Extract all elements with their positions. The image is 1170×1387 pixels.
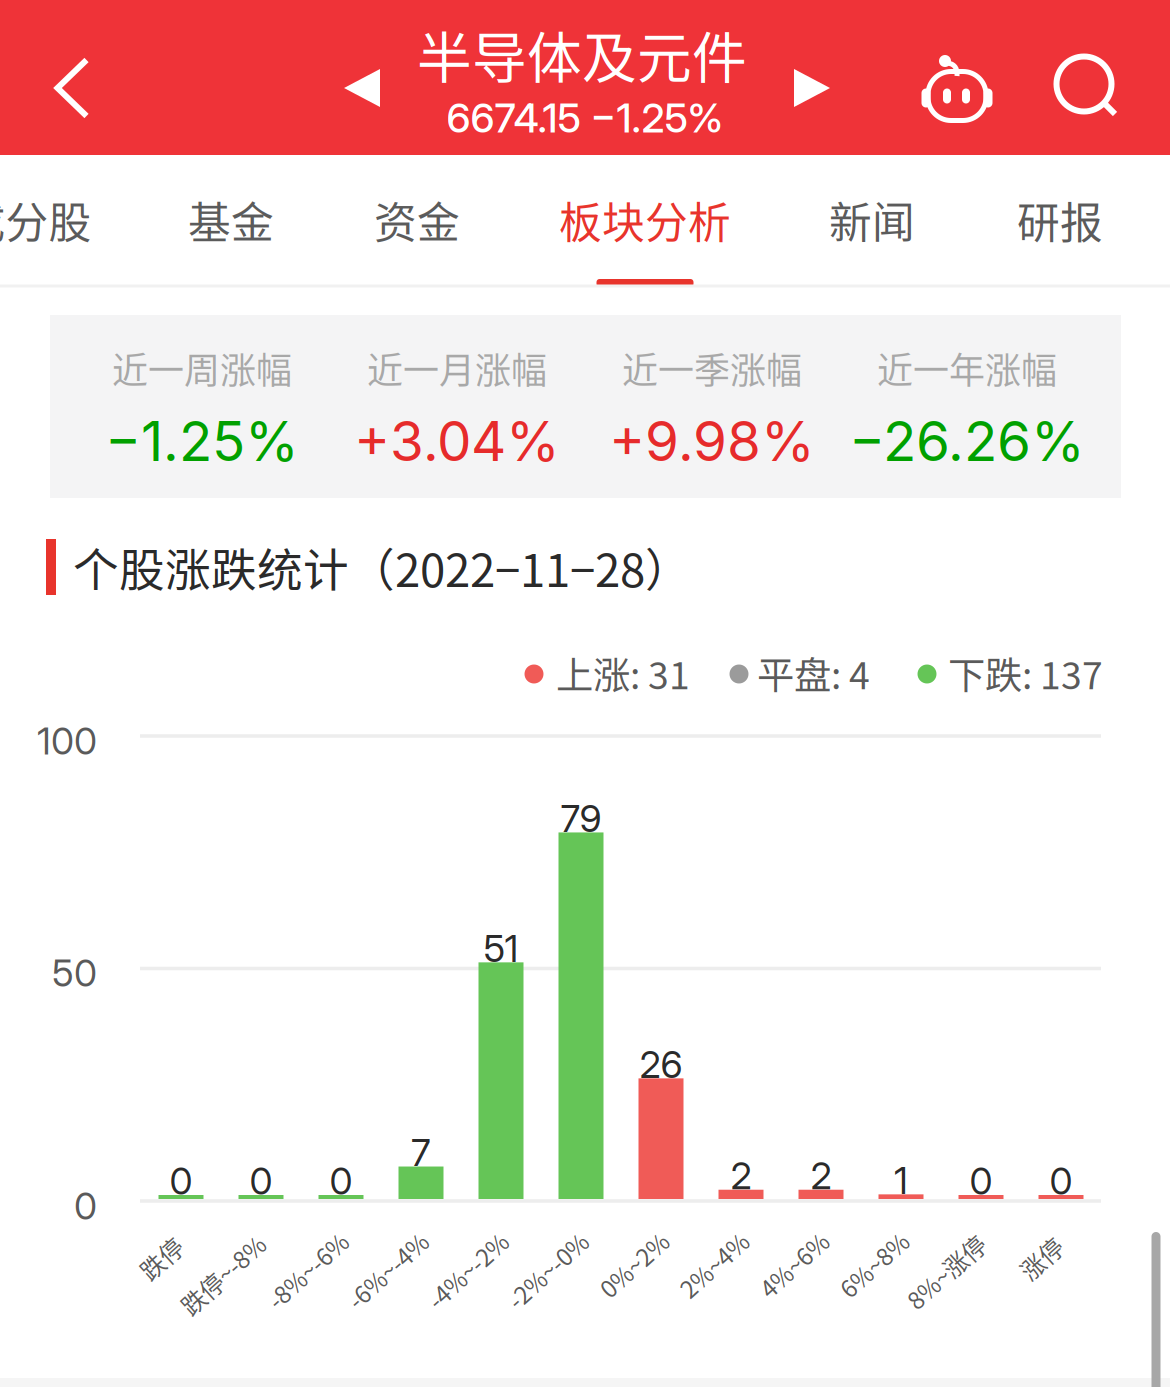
staticText: 6674.15 −1.25% bbox=[446, 94, 723, 142]
staticText: 26 bbox=[639, 1042, 682, 1087]
staticText: 近一年涨幅 bbox=[877, 342, 1057, 394]
staticText: -2%~-0% bbox=[498, 1253, 597, 1288]
button[interactable]: 资金 bbox=[322, 156, 512, 284]
staticText: 0 bbox=[969, 1158, 992, 1204]
button[interactable]: 板块分析 bbox=[550, 156, 740, 284]
staticText: 6%~8% bbox=[832, 1247, 915, 1282]
button[interactable]: Back bbox=[12, 10, 132, 165]
staticText: 上涨: 31 bbox=[556, 646, 690, 700]
staticText: -8%~-6% bbox=[258, 1253, 357, 1288]
staticText: 近一月涨幅 bbox=[367, 342, 547, 394]
button[interactable]: AI assistant bbox=[897, 7, 1017, 162]
staticText: 79 bbox=[560, 796, 601, 841]
staticText: +3.04% bbox=[354, 408, 560, 474]
staticText: 0 bbox=[1049, 1158, 1072, 1204]
staticText: 1 bbox=[894, 1158, 908, 1203]
staticText: −1.25% bbox=[105, 408, 299, 474]
staticText: 2%~4% bbox=[672, 1247, 755, 1282]
staticText: 成分股 bbox=[0, 189, 91, 251]
staticText: 2 bbox=[810, 1153, 831, 1198]
staticText: 基金 bbox=[188, 189, 274, 251]
staticText: 板块分析 bbox=[559, 189, 731, 251]
button[interactable]: 新闻 bbox=[777, 156, 967, 284]
staticText: -6%~-4% bbox=[338, 1253, 437, 1288]
staticText: 7 bbox=[411, 1130, 431, 1175]
staticText: −26.26% bbox=[849, 408, 1085, 474]
staticText: 0 bbox=[249, 1158, 272, 1204]
staticText: 近一周涨幅 bbox=[112, 342, 292, 394]
button[interactable]: Next sector bbox=[767, 28, 857, 148]
staticText: 跌停~-8% bbox=[171, 1257, 275, 1292]
button[interactable]: Previous sector bbox=[317, 28, 407, 148]
button[interactable]: 研报 bbox=[965, 156, 1155, 284]
staticText: 2 bbox=[730, 1153, 751, 1198]
button[interactable]: Search bbox=[1027, 9, 1147, 164]
staticText: 涨停 bbox=[1017, 1241, 1065, 1275]
staticText: 51 bbox=[483, 926, 518, 971]
button[interactable]: 成分股 bbox=[0, 156, 122, 284]
staticText: 0%~2% bbox=[592, 1247, 675, 1282]
staticText: 资金 bbox=[374, 189, 460, 251]
staticText: 下跌: 137 bbox=[948, 646, 1103, 700]
staticText: 0 bbox=[329, 1158, 352, 1204]
staticText: 新闻 bbox=[829, 189, 915, 251]
staticText: 0 bbox=[74, 1183, 97, 1229]
button[interactable]: 基金 bbox=[136, 156, 326, 284]
staticText: 跌停 bbox=[137, 1241, 185, 1275]
staticText: +9.98% bbox=[609, 408, 815, 474]
staticText: 8%~涨停 bbox=[898, 1254, 994, 1289]
staticText: 平盘: 4 bbox=[757, 646, 870, 700]
staticText: 0 bbox=[169, 1158, 192, 1204]
staticText: 50 bbox=[52, 950, 97, 996]
staticText: 研报 bbox=[1017, 189, 1103, 251]
staticText: 个股涨跌统计（2022−11−28） bbox=[73, 534, 691, 600]
staticText: 100 bbox=[37, 718, 97, 764]
staticText: 近一季涨幅 bbox=[622, 342, 802, 394]
staticText: 4%~6% bbox=[752, 1247, 835, 1282]
staticText: 半导体及元件 bbox=[417, 14, 747, 94]
staticText: -4%~-2% bbox=[418, 1253, 517, 1288]
